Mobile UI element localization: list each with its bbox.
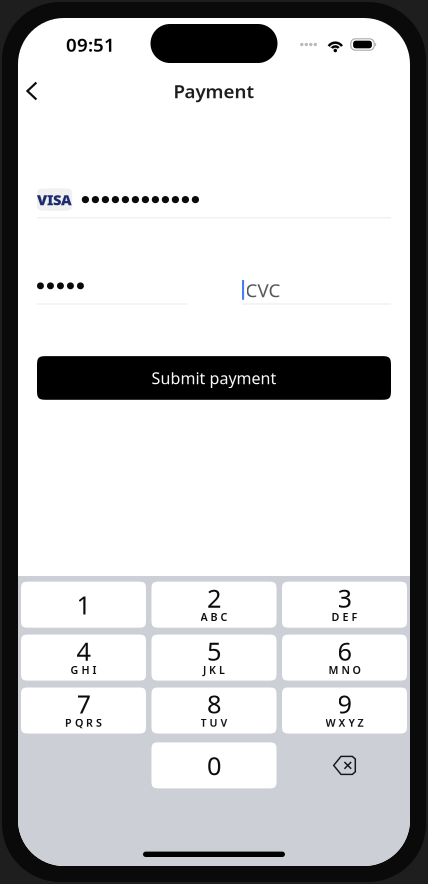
button[interactable]: 0 — [151, 742, 276, 788]
staticText: W X Y Z — [325, 716, 363, 730]
button[interactable]: 5 — [151, 635, 276, 681]
staticText: Payment — [173, 79, 254, 103]
button[interactable]: 9 — [282, 687, 407, 733]
button[interactable]: 4 — [21, 635, 146, 681]
staticText: M N O — [328, 663, 360, 677]
staticText: T U V — [200, 716, 227, 730]
button[interactable]: Delete — [282, 742, 407, 788]
button[interactable]: Back — [18, 72, 62, 110]
staticText: 3 — [337, 581, 351, 615]
staticText: 5 — [207, 634, 221, 668]
staticText: 8 — [207, 687, 221, 720]
button[interactable]: Submit payment — [37, 356, 391, 400]
staticText: 9 — [337, 687, 351, 720]
staticText: 1 — [76, 588, 90, 621]
staticText: A B C — [200, 610, 227, 624]
staticText: CVC — [246, 277, 281, 302]
button[interactable]: 8 — [151, 687, 276, 733]
staticText: D E F — [331, 610, 357, 624]
staticText: 7 — [76, 687, 90, 720]
staticText: 6 — [337, 634, 351, 668]
button[interactable]: 6 — [282, 635, 407, 681]
staticText: 2 — [207, 581, 221, 615]
button[interactable]: 3 — [282, 582, 407, 628]
staticText: P Q R S — [65, 716, 102, 730]
staticText: G H I — [70, 663, 96, 677]
button[interactable]: 1 — [21, 582, 146, 628]
staticText: 4 — [76, 634, 90, 668]
staticText: J K L — [203, 663, 225, 677]
staticText: 09:51 — [66, 32, 115, 57]
staticText: VISA — [37, 190, 72, 209]
button[interactable]: 7 — [21, 687, 146, 733]
staticText: 0 — [207, 749, 221, 782]
staticText: Submit payment — [151, 367, 276, 388]
button[interactable]: 2 — [151, 582, 276, 628]
